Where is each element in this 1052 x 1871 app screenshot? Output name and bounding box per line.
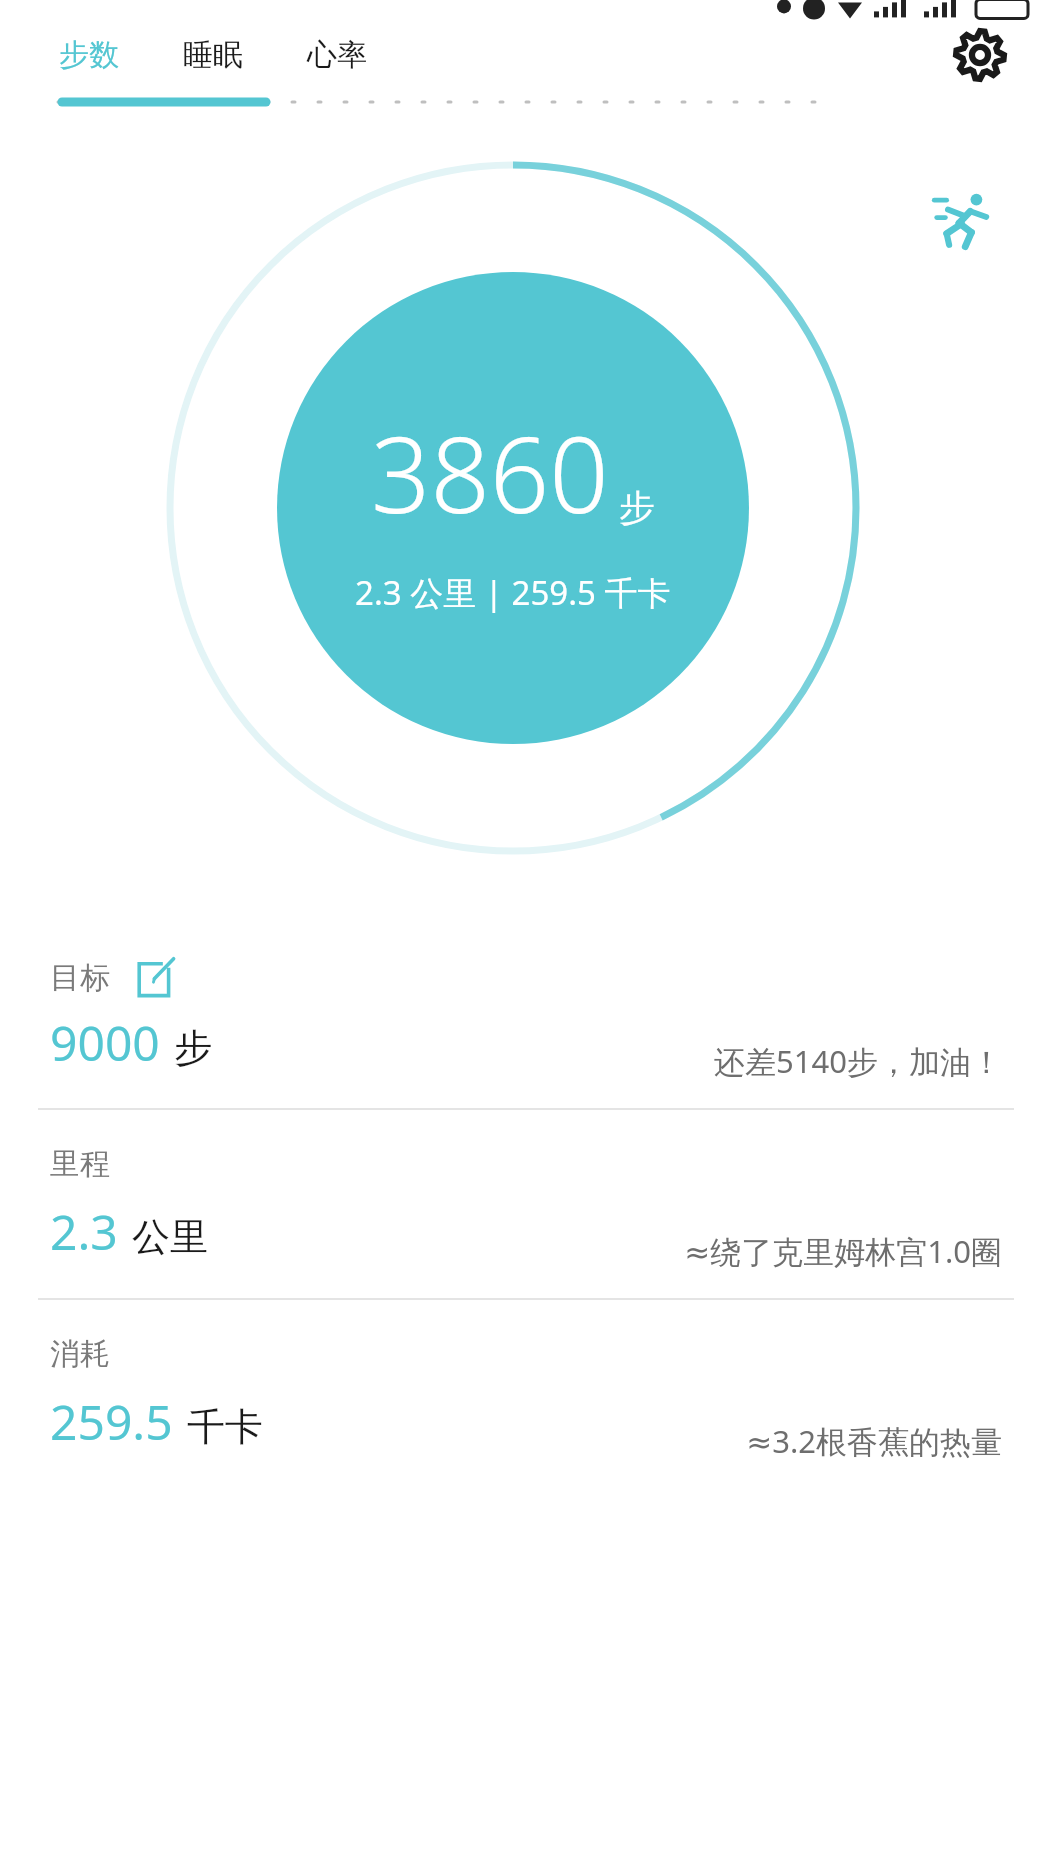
button[interactable]: 里程 [0, 1110, 1052, 1298]
staticText: ≈绕了克里姆林宫1.0圈 [684, 1230, 1002, 1272]
staticText: 2.3 公里 | 259.5 千卡 [355, 570, 671, 615]
staticText: 步 [619, 485, 655, 530]
staticText: 消耗 [50, 1335, 110, 1373]
button[interactable]: 心率 [301, 20, 373, 90]
button[interactable]: Running activity [928, 184, 1000, 256]
button[interactable]: 消耗 [0, 1300, 1052, 1488]
staticText: 睡眠 [183, 36, 243, 74]
staticText: 还差5140步，加油！ [714, 1040, 1002, 1082]
button[interactable]: 步数 [53, 20, 125, 90]
staticText: 9000 [50, 1010, 160, 1075]
staticText: 259.5 [50, 1389, 173, 1454]
button[interactable]: Edit goal [132, 954, 180, 1002]
staticText: 3860 [371, 402, 609, 544]
staticText: ≈3.2根香蕉的热量 [746, 1420, 1002, 1462]
staticText: 心率 [307, 36, 367, 74]
staticText: 目标 [50, 959, 110, 997]
staticText: 里程 [50, 1145, 110, 1183]
staticText: 公里 [132, 1213, 208, 1261]
staticText: 步 [174, 1024, 212, 1072]
button[interactable]: Settings [952, 27, 1008, 83]
staticText: 千卡 [187, 1403, 263, 1451]
staticText: 步数 [59, 36, 119, 74]
button[interactable]: 目标 [0, 920, 1052, 1108]
staticText: 2.3 [50, 1199, 118, 1264]
button[interactable]: 睡眠 [177, 20, 249, 90]
